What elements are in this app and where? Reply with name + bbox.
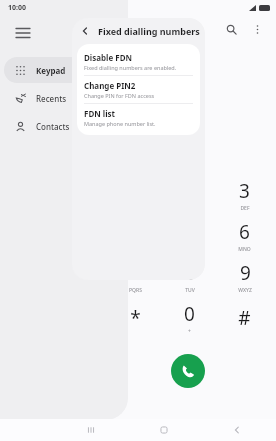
- button[interactable]: *: [108, 299, 162, 336]
- button[interactable]: 9: [217, 258, 272, 295]
- button[interactable]: #: [217, 299, 272, 336]
- button[interactable]: 7: [108, 258, 162, 295]
- button[interactable]: Back: [76, 22, 94, 40]
- button[interactable]: Recent apps: [80, 419, 102, 441]
- staticText: 6: [239, 219, 250, 245]
- staticText: Change PIN for FDN access: [84, 92, 155, 99]
- button[interactable]: Disable FDN: [77, 48, 200, 76]
- staticText: 10:00: [8, 3, 26, 13]
- staticText: WXYZ: [238, 287, 252, 294]
- staticText: Fixed dialling numbers: [98, 25, 200, 37]
- staticText: 7: [130, 260, 141, 286]
- staticText: 8: [184, 260, 195, 286]
- staticText: Keypad: [36, 65, 66, 76]
- button[interactable]: 6: [217, 217, 272, 254]
- button[interactable]: Keypad: [4, 57, 124, 83]
- staticText: Change PIN2: [84, 80, 136, 91]
- button[interactable]: Open navigation menu: [6, 16, 40, 50]
- button[interactable]: FDN list: [77, 104, 200, 131]
- staticText: *: [130, 305, 141, 331]
- button[interactable]: 5: [162, 217, 217, 254]
- staticText: TUV: [185, 287, 195, 294]
- button[interactable]: 0: [162, 299, 217, 336]
- staticText: Fixed dialling numbers are enabled.: [84, 64, 177, 71]
- button[interactable]: Recents: [4, 85, 124, 111]
- staticText: Recents: [36, 93, 67, 104]
- staticText: 3: [239, 178, 250, 204]
- staticText: DEF: [240, 205, 250, 212]
- staticText: 9: [240, 260, 251, 286]
- staticText: #: [238, 305, 251, 331]
- staticText: Contacts: [36, 121, 70, 132]
- button[interactable]: 8: [162, 258, 217, 295]
- button[interactable]: Search: [218, 16, 244, 42]
- staticText: FDN list: [84, 108, 116, 119]
- staticText: PQRS: [129, 287, 142, 294]
- staticText: Manage phone number list.: [84, 120, 156, 127]
- button[interactable]: Contacts: [4, 113, 124, 139]
- staticText: +: [188, 328, 191, 335]
- button[interactable]: Change PIN2: [77, 76, 200, 104]
- staticText: 0: [184, 301, 195, 327]
- button[interactable]: More options: [244, 16, 270, 42]
- staticText: Disable FDN: [84, 52, 133, 63]
- button[interactable]: 2: [162, 176, 217, 213]
- staticText: MNO: [238, 246, 251, 253]
- button[interactable]: Back: [226, 419, 248, 441]
- button[interactable]: 3: [217, 176, 272, 213]
- button[interactable]: Call: [171, 354, 205, 388]
- button[interactable]: Home: [153, 419, 175, 441]
